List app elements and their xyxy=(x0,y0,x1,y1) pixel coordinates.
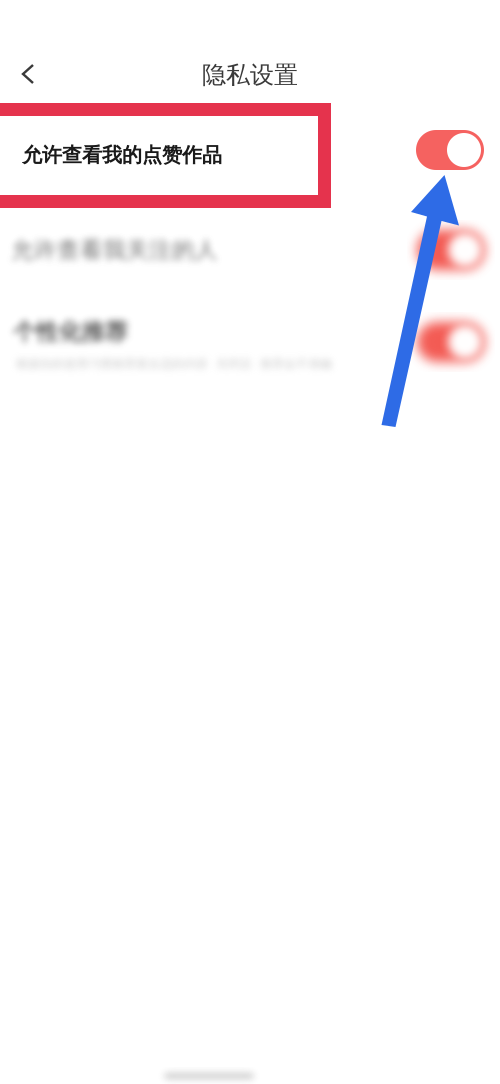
button[interactable]: 允许查看我的点赞作品 xyxy=(408,122,492,178)
staticText: 隐私设置 xyxy=(202,60,298,90)
staticText: 允许查看我的点赞作品 xyxy=(22,143,222,167)
button[interactable]: 允许查看我的点赞作品 xyxy=(0,115,500,194)
button[interactable]: Back xyxy=(4,50,52,98)
